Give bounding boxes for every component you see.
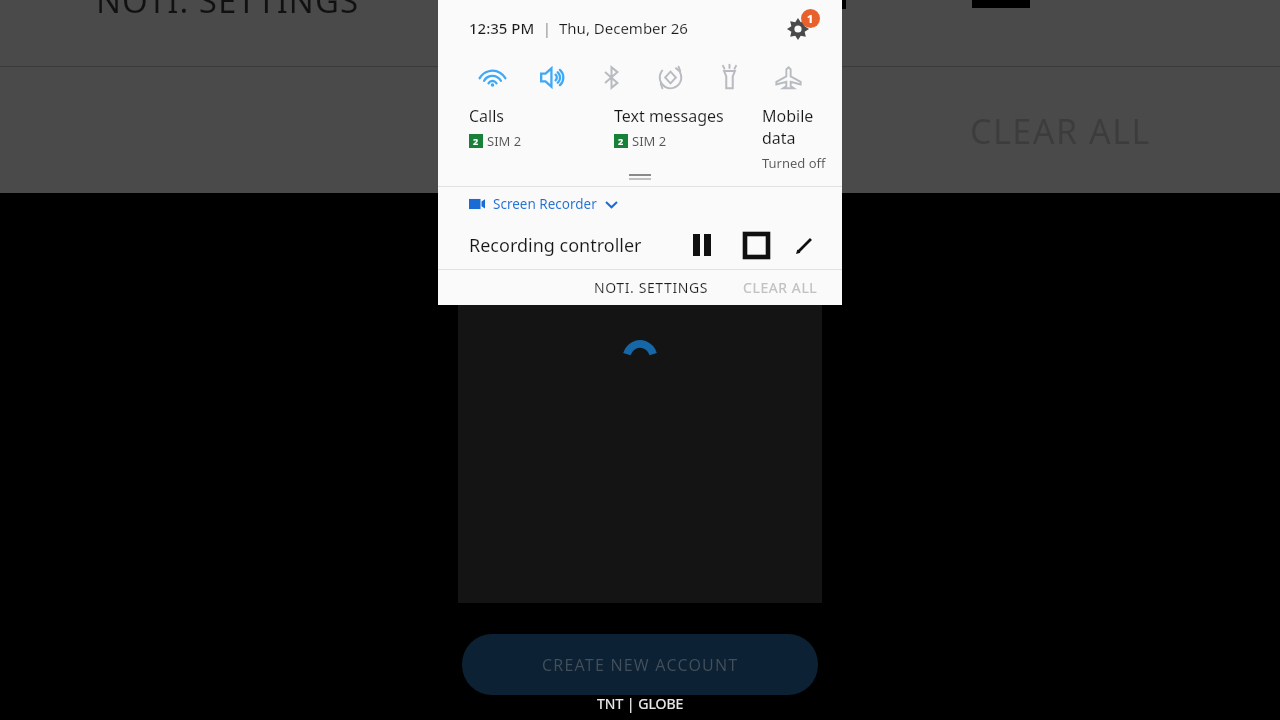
button[interactable]: Sound xyxy=(522,55,582,100)
button[interactable]: Text messages xyxy=(614,100,762,168)
button[interactable]: Screen Recorder xyxy=(438,187,842,221)
button[interactable]: Auto rotate xyxy=(641,55,700,100)
button[interactable]: Airplane mode xyxy=(759,55,818,100)
button[interactable]: Mobile data xyxy=(762,100,842,168)
staticText: Mobile data xyxy=(762,105,842,149)
button[interactable]: Stop recording xyxy=(734,223,778,267)
button[interactable]: CLEAR ALL xyxy=(729,270,832,305)
button[interactable]: Calls xyxy=(469,100,614,168)
staticText: Thu, December 26 xyxy=(559,18,688,38)
staticText: Recording controller xyxy=(469,233,642,258)
staticText: SIM 2 xyxy=(632,132,667,150)
staticText: 1 xyxy=(807,11,814,26)
staticText: Calls xyxy=(469,105,505,127)
staticText: Turned off xyxy=(762,154,826,168)
staticText: CLEAR ALL xyxy=(970,108,1151,154)
button[interactable]: Settings xyxy=(778,5,824,51)
staticText: SIM 2 xyxy=(487,132,522,150)
staticText: NOTI. SETTINGS xyxy=(594,278,709,297)
button[interactable]: Wi-Fi xyxy=(462,55,522,100)
button[interactable]: Draw xyxy=(784,225,824,265)
button[interactable]: NOTI. SETTINGS xyxy=(580,270,723,305)
staticText: 12:35 PM xyxy=(469,18,535,38)
staticText: 2 xyxy=(473,135,479,147)
staticText: NOTI. SETTINGS xyxy=(96,0,360,18)
button[interactable]: Bluetooth xyxy=(582,55,641,100)
staticText: TNT | GLOBE xyxy=(597,694,684,713)
staticText: CLEAR ALL xyxy=(743,278,818,297)
staticText: | xyxy=(535,18,559,38)
staticText: 2 xyxy=(618,135,624,147)
button[interactable]: Pause recording xyxy=(680,223,724,267)
staticText: Screen Recorder xyxy=(493,195,597,213)
staticText: Text messages xyxy=(614,105,724,127)
staticText: CREATE NEW ACCOUNT xyxy=(542,654,739,676)
button[interactable]: CREATE NEW ACCOUNT xyxy=(462,634,818,695)
button[interactable]: Flashlight xyxy=(700,55,759,100)
